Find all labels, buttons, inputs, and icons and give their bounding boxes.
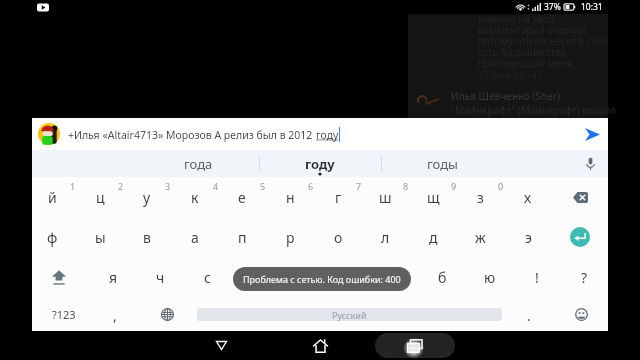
staticText: ф bbox=[47, 228, 58, 247]
staticText: с bbox=[204, 268, 211, 287]
button[interactable]: э bbox=[504, 217, 552, 257]
staticText: э bbox=[525, 228, 532, 247]
staticText: ? bbox=[581, 268, 588, 287]
button[interactable]: р bbox=[266, 217, 314, 257]
button[interactable]: Backspace bbox=[556, 177, 604, 217]
staticText: Проблема с сетью. Код ошибки: 400 bbox=[243, 273, 401, 285]
staticText: х bbox=[524, 188, 532, 207]
button[interactable]: Send bbox=[577, 119, 607, 149]
staticText: 3 bbox=[165, 180, 171, 192]
staticText: а bbox=[191, 228, 199, 247]
staticText: п bbox=[238, 228, 247, 247]
button[interactable]: ф bbox=[28, 217, 76, 257]
staticText: 9 bbox=[451, 180, 457, 192]
staticText: д bbox=[429, 228, 438, 247]
button[interactable]: ю bbox=[466, 257, 513, 297]
button[interactable]: ! bbox=[513, 257, 560, 297]
staticText: ! bbox=[535, 268, 539, 287]
staticText: у bbox=[143, 188, 151, 207]
staticText: ?123 bbox=[52, 307, 76, 322]
button[interactable]: ь bbox=[372, 257, 419, 297]
button[interactable]: щ bbox=[409, 177, 457, 217]
button[interactable]: Shift bbox=[28, 257, 89, 297]
staticText: ы bbox=[95, 228, 106, 247]
staticText: б bbox=[438, 268, 447, 287]
staticText: л bbox=[381, 228, 390, 247]
staticText: ж bbox=[475, 228, 486, 247]
button[interactable]: п bbox=[218, 217, 266, 257]
staticText: 1 bbox=[70, 180, 76, 192]
staticText: , bbox=[113, 306, 117, 325]
button[interactable]: Русский bbox=[197, 308, 502, 321]
staticText: Русский bbox=[332, 309, 367, 321]
staticText: 37% bbox=[544, 1, 561, 13]
button[interactable]: б bbox=[419, 257, 466, 297]
staticText: суть большинства bbox=[478, 45, 567, 59]
button[interactable]: м bbox=[231, 257, 278, 297]
button[interactable]: я bbox=[90, 257, 137, 297]
staticText: +Илья «Altair4713» Морозов А релиз был в… bbox=[68, 128, 316, 142]
button[interactable]: Recent apps bbox=[399, 331, 431, 360]
button[interactable]: ы bbox=[76, 217, 124, 257]
staticText: р bbox=[286, 228, 295, 247]
staticText: 10:31 bbox=[581, 1, 603, 13]
staticText: и bbox=[297, 268, 306, 287]
staticText: году bbox=[316, 128, 339, 142]
staticText: ч bbox=[156, 268, 165, 287]
button[interactable]: н bbox=[266, 177, 314, 217]
staticText: потому что он несет в себе bbox=[478, 34, 609, 48]
button[interactable]: Emoji bbox=[557, 297, 606, 331]
button[interactable]: у bbox=[123, 177, 171, 217]
staticText: именно на твой bbox=[478, 12, 555, 26]
button[interactable]: Enter bbox=[556, 217, 604, 257]
button[interactable]: ж bbox=[456, 217, 504, 257]
button[interactable]: , bbox=[92, 297, 137, 331]
button[interactable]: Back bbox=[205, 331, 237, 360]
button[interactable]: в bbox=[123, 217, 171, 257]
staticText: ю bbox=[484, 268, 496, 287]
button[interactable]: е bbox=[218, 177, 266, 217]
staticText: н bbox=[286, 188, 295, 207]
staticText: года bbox=[184, 155, 213, 173]
staticText: т bbox=[345, 268, 352, 287]
staticText: 8 bbox=[403, 180, 409, 192]
button[interactable]: д bbox=[409, 217, 457, 257]
button[interactable]: ? bbox=[561, 257, 608, 297]
staticText: 17 мая 2014 г. bbox=[478, 68, 546, 82]
button[interactable]: г bbox=[314, 177, 362, 217]
staticText: 5 bbox=[260, 180, 266, 192]
staticText: ц bbox=[96, 188, 105, 207]
staticText: годы bbox=[427, 155, 458, 173]
staticText: комментарий ответил bbox=[478, 23, 586, 37]
button[interactable]: к bbox=[171, 177, 219, 217]
staticText: ш bbox=[379, 188, 392, 207]
button[interactable]: ц bbox=[76, 177, 124, 217]
button[interactable]: т bbox=[325, 257, 372, 297]
button[interactable]: году bbox=[259, 150, 381, 177]
staticText: в bbox=[143, 228, 151, 247]
button[interactable]: Home bbox=[304, 331, 336, 360]
button[interactable]: ч bbox=[137, 257, 184, 297]
button[interactable]: Voice input bbox=[576, 150, 604, 177]
button[interactable]: с bbox=[184, 257, 231, 297]
staticText: 6 bbox=[308, 180, 314, 192]
button[interactable]: Symbols bbox=[33, 297, 94, 331]
button[interactable]: и bbox=[278, 257, 325, 297]
button[interactable]: а bbox=[171, 217, 219, 257]
button[interactable]: й bbox=[28, 177, 76, 217]
staticText: критикующих меня. bbox=[478, 56, 576, 70]
button[interactable]: Change language bbox=[141, 297, 194, 331]
button[interactable]: х bbox=[504, 177, 552, 217]
button[interactable]: ш bbox=[361, 177, 409, 217]
staticText: щ bbox=[427, 188, 440, 207]
staticText: й bbox=[48, 188, 57, 207]
button[interactable]: з bbox=[456, 177, 504, 217]
button[interactable]: годы bbox=[381, 150, 503, 177]
staticText: я bbox=[109, 268, 118, 287]
button[interactable]: . bbox=[508, 297, 550, 331]
staticText: . bbox=[527, 306, 531, 325]
button[interactable]: о bbox=[314, 217, 362, 257]
staticText: о bbox=[334, 228, 343, 247]
button[interactable]: года bbox=[137, 150, 259, 177]
button[interactable]: л bbox=[361, 217, 409, 257]
